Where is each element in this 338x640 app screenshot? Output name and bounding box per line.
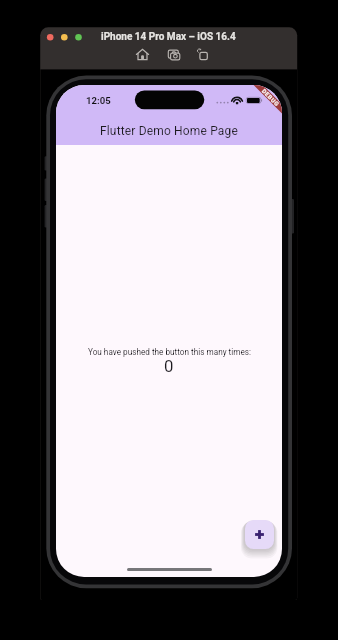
staticText: You have pushed the button this many tim… [88, 347, 251, 357]
staticText: Flutter Demo Home Page [100, 124, 238, 138]
button[interactable]: Increment [245, 520, 274, 549]
button[interactable]: Screenshot [165, 45, 183, 63]
staticText: 0 [164, 356, 174, 376]
button[interactable]: Flutter Demo Home Page [56, 85, 282, 145]
button[interactable]: Rotate [194, 45, 212, 63]
staticText: DEBUG [260, 88, 281, 108]
button[interactable]: Home [134, 45, 152, 63]
staticText: iPhone 14 Pro Max – iOS 16.4 [101, 31, 236, 43]
staticText: 12:05 [86, 95, 111, 106]
